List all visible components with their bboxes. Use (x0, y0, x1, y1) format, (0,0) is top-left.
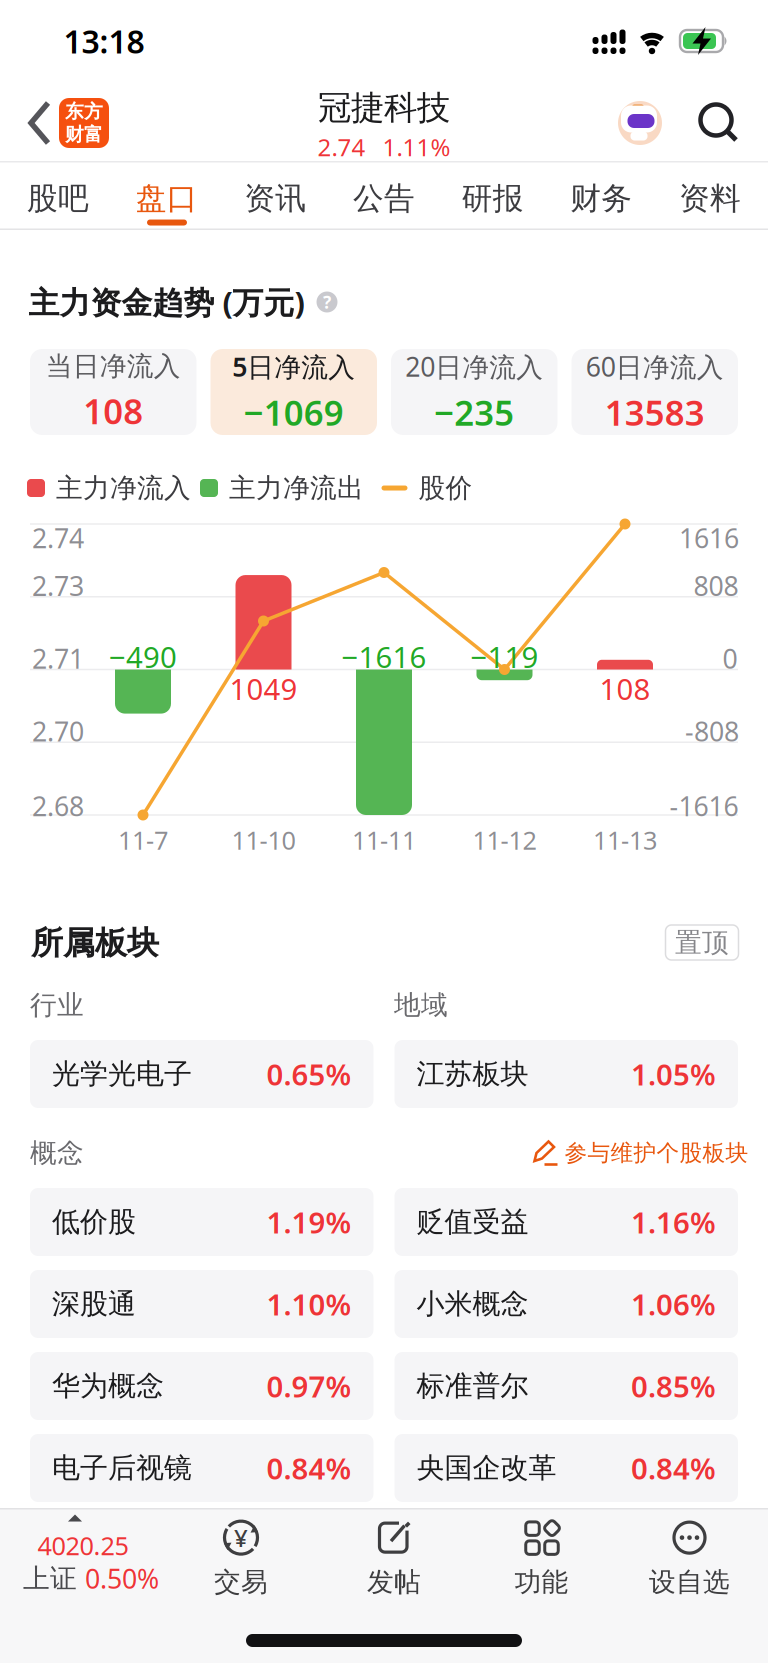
staticText: 11-11 (352, 823, 416, 857)
staticText: 冠捷科技 (318, 87, 450, 128)
staticText: 低价股 (52, 1205, 136, 1239)
staticText: 设自选 (649, 1566, 730, 1598)
staticText: 11-10 (231, 823, 295, 857)
staticText: ? (323, 290, 331, 313)
staticText: 研报 (462, 180, 524, 217)
staticText: 2.70 (32, 713, 84, 749)
staticText: 5日净流入 (232, 349, 355, 384)
button[interactable]: 小米概念 (394, 1270, 738, 1338)
button[interactable]: 标准普尔 (394, 1352, 738, 1420)
button[interactable]: 低价股 (30, 1188, 373, 1256)
button[interactable]: 20日净流入 (391, 349, 557, 435)
staticText: 股价 (418, 472, 472, 504)
staticText: 公告 (353, 180, 415, 217)
staticText: 当日净流入 (46, 350, 181, 383)
staticText: 股吧 (27, 180, 89, 217)
button[interactable]: 置顶 (665, 925, 738, 960)
staticText: 0.84% (631, 1448, 716, 1487)
staticText: 央国企改革 (416, 1451, 556, 1485)
staticText: 2.68 (32, 788, 84, 824)
staticText: 108 (599, 669, 650, 708)
button[interactable]: 贬值受益 (394, 1188, 738, 1256)
staticText: 11-7 (118, 823, 168, 857)
button[interactable]: 光学光电子 (30, 1040, 373, 1108)
staticText: 13:18 (63, 20, 144, 62)
button[interactable]: 搜索 (697, 101, 739, 143)
staticText: 功能 (514, 1566, 568, 1598)
button[interactable]: 研报 (443, 168, 543, 228)
staticText: 参与维护个股板块 (564, 1139, 748, 1167)
staticText: −119 (470, 637, 538, 676)
staticText: 财务 (570, 180, 632, 217)
button[interactable]: 盘口 (117, 168, 217, 228)
staticText: −235 (434, 389, 514, 435)
button[interactable]: 当日净流入 (30, 349, 196, 435)
button[interactable]: 央国企改革 (394, 1434, 738, 1502)
staticText: 行业 (30, 989, 84, 1021)
staticText: 2.74 (317, 131, 365, 163)
button[interactable]: 60日净流入 (571, 349, 738, 435)
button[interactable]: 智能助手 (618, 101, 662, 145)
staticText: 11-13 (593, 823, 657, 857)
staticText: 11-12 (472, 823, 536, 857)
staticText: 13583 (605, 389, 705, 435)
staticText: 0.97% (266, 1366, 351, 1405)
staticText: 1.05% (631, 1054, 716, 1093)
staticText: 1.16% (631, 1202, 716, 1241)
button[interactable]: 财务 (551, 168, 651, 228)
staticText: 光学光电子 (52, 1057, 192, 1091)
staticText: 2.73 (32, 568, 84, 603)
button[interactable]: 华为概念 (30, 1352, 373, 1420)
button[interactable]: 5日净流入 (210, 349, 377, 435)
staticText: 808 (693, 568, 738, 603)
button[interactable]: 资料 (660, 168, 760, 228)
staticText: 所属板块 (31, 923, 159, 963)
button[interactable]: 功能 (467, 1510, 615, 1605)
button[interactable]: 参与维护个股板块 (531, 1139, 748, 1167)
staticText: -1616 (669, 788, 738, 824)
staticText: 主力资金趋势 (万元) (28, 282, 304, 322)
button[interactable]: 资讯 (225, 168, 325, 228)
staticText: 小米概念 (416, 1287, 528, 1321)
staticText: 2.74 (32, 520, 84, 556)
staticText: 2.71 (32, 641, 84, 676)
staticText: 标准普尔 (416, 1369, 528, 1403)
staticText: 0 (722, 641, 737, 676)
button[interactable]: 电子后视镜 (30, 1434, 373, 1502)
staticText: 贬值受益 (416, 1205, 528, 1239)
staticText: 1.19% (266, 1202, 351, 1241)
staticText: 0.50% (85, 1561, 159, 1596)
button[interactable]: 股吧 (8, 168, 108, 228)
staticText: 0.85% (631, 1366, 716, 1405)
button[interactable]: 上证指数 (0, 1509, 166, 1604)
staticText: 4020.25 (37, 1529, 128, 1562)
staticText: −490 (109, 637, 177, 676)
staticText: 主力净流出 (229, 472, 364, 504)
staticText: 1.10% (266, 1284, 351, 1323)
staticText: −1616 (341, 637, 426, 676)
button[interactable]: ¥ (167, 1510, 315, 1605)
button[interactable]: 江苏板块 (394, 1040, 738, 1108)
button[interactable]: 帮助 (316, 291, 337, 312)
staticText: 财富 (65, 123, 103, 146)
staticText: 1616 (679, 520, 739, 556)
staticText: 概念 (30, 1137, 84, 1169)
button[interactable]: 公告 (334, 168, 434, 228)
button[interactable]: 深股通 (30, 1270, 373, 1338)
button[interactable]: 发帖 (320, 1510, 468, 1605)
staticText: 资讯 (244, 180, 306, 217)
button[interactable]: 返回 (23, 96, 57, 150)
staticText: 主力净流入 (56, 472, 191, 504)
staticText: 地域 (394, 989, 448, 1021)
staticText: 华为概念 (52, 1369, 164, 1403)
button[interactable]: 设自选 (615, 1510, 763, 1605)
staticText: 0.84% (266, 1448, 351, 1487)
button[interactable]: 东方财富 (59, 98, 109, 148)
staticText: 1.11% (382, 131, 450, 163)
staticText: 20日净流入 (405, 349, 543, 384)
staticText: 深股通 (52, 1287, 136, 1321)
staticText: 0.65% (266, 1054, 351, 1093)
staticText: 108 (83, 388, 143, 434)
staticText: 60日净流入 (586, 349, 724, 384)
staticText: 发帖 (367, 1566, 421, 1598)
